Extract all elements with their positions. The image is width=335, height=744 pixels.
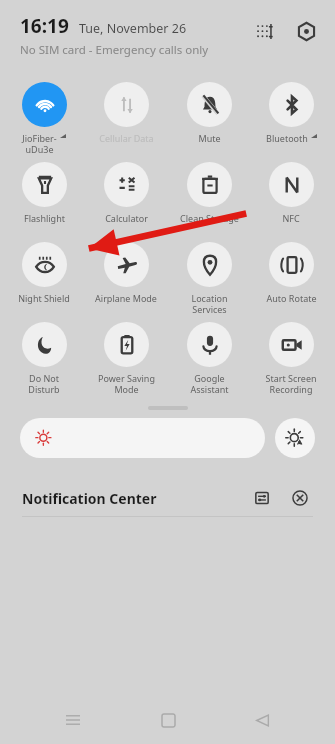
staticText: JioFiber- uDu3e xyxy=(22,132,57,155)
staticText: Clean Storage xyxy=(180,212,239,224)
button[interactable]: Brightness xyxy=(20,418,265,458)
staticText: Location Services xyxy=(191,292,228,315)
button[interactable]: Auto Rotate xyxy=(253,236,329,316)
button[interactable]: Calculator xyxy=(88,156,164,236)
staticText: No SIM card - Emergency calls only xyxy=(20,42,209,58)
staticText: NFC xyxy=(282,212,300,224)
button[interactable]: Airplane Mode xyxy=(88,236,164,316)
button[interactable]: Bluetooth xyxy=(253,76,329,156)
button[interactable]: Edit tiles xyxy=(249,16,279,46)
button[interactable]: Power Saving Mode xyxy=(88,316,164,396)
button[interactable]: Night Shield xyxy=(6,236,82,316)
staticText: Airplane Mode xyxy=(95,292,157,304)
staticText: Night Shield xyxy=(18,292,70,304)
staticText: Calculator xyxy=(105,212,148,224)
button[interactable]: Do Not Disturb xyxy=(6,316,82,396)
button[interactable]: Clear all notifications xyxy=(287,485,313,511)
button[interactable]: Back xyxy=(240,698,284,742)
button[interactable]: Cellular Data xyxy=(88,76,164,156)
staticText: 16:19 xyxy=(20,13,69,39)
staticText: Bluetooth xyxy=(266,132,308,144)
staticText: Mute xyxy=(198,132,221,144)
staticText: Cellular Data xyxy=(99,132,154,144)
staticText: Start Screen Recording xyxy=(265,372,317,395)
button[interactable]: Settings xyxy=(291,16,321,46)
staticText: Flashlight xyxy=(24,212,65,224)
button[interactable]: Mute xyxy=(171,76,247,156)
staticText: Notification Center xyxy=(22,489,157,508)
button[interactable]: Clean Storage xyxy=(171,156,247,236)
staticText: Google Assistant xyxy=(190,372,229,395)
button[interactable]: JioFiber- uDu3e xyxy=(6,76,82,156)
staticText: Tue, November 26 xyxy=(79,20,187,37)
button[interactable]: Google Assistant xyxy=(171,316,247,396)
button[interactable]: Home xyxy=(146,698,190,742)
button[interactable]: Start Screen Recording xyxy=(253,316,329,396)
button[interactable]: Recents xyxy=(51,698,95,742)
button[interactable]: Location Services xyxy=(171,236,247,316)
button[interactable]: Flashlight xyxy=(6,156,82,236)
staticText: Do Not Disturb xyxy=(28,372,60,395)
button[interactable]: Auto brightness xyxy=(275,418,315,458)
button[interactable]: Notification settings xyxy=(249,485,275,511)
button[interactable]: NFC xyxy=(253,156,329,236)
staticText: Auto Rotate xyxy=(266,292,317,304)
staticText: Power Saving Mode xyxy=(98,372,155,395)
